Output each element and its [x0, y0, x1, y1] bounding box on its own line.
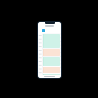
- button[interactable]: Profile: [42, 29, 45, 32]
- button[interactable]: Calendar title: [38, 22, 61, 78]
- button[interactable]: Calendar title: [45, 25, 54, 27]
